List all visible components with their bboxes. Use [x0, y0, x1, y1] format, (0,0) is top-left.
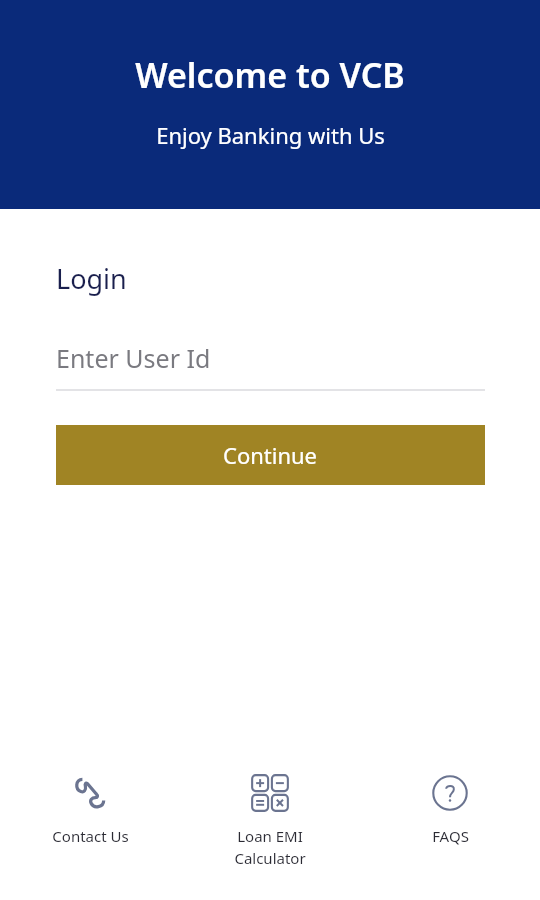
staticText: Continue: [223, 440, 318, 470]
staticText: Contact Us: [52, 826, 129, 846]
button[interactable]: Enter User Id: [56, 341, 485, 391]
staticText: Enter User Id: [56, 341, 211, 375]
staticText: Enjoy Banking with Us: [156, 120, 385, 150]
button[interactable]: Continue: [56, 425, 485, 485]
staticText: Welcome to VCB: [135, 52, 405, 98]
staticText: Loan EMI Calculator: [234, 826, 306, 869]
button[interactable]: Loan EMI Calculator: [180, 770, 360, 873]
button[interactable]: Contact Us: [0, 770, 180, 850]
button[interactable]: FAQS: [360, 770, 540, 850]
staticText: Login: [56, 260, 127, 297]
staticText: FAQS: [432, 826, 469, 846]
